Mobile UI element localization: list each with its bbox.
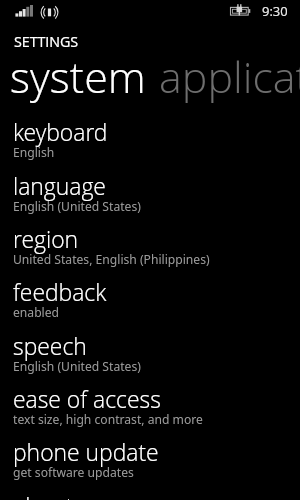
staticText: enabled	[13, 304, 60, 321]
other: Battery charging	[229, 3, 252, 19]
button[interactable]: language	[0, 171, 300, 224]
button[interactable]: applications	[159, 47, 300, 106]
staticText: speech	[13, 331, 87, 362]
staticText: English (United States)	[13, 198, 141, 215]
staticText: ease of access	[13, 384, 161, 415]
button[interactable]: ease of access	[0, 384, 300, 437]
other: Roaming	[41, 3, 59, 19]
button[interactable]: keyboard	[0, 117, 300, 170]
staticText: SETTINGS	[14, 32, 79, 51]
button[interactable]: speech	[0, 331, 300, 384]
button[interactable]: feedback	[0, 277, 300, 330]
button[interactable]: region	[0, 224, 300, 277]
staticText: phone update	[13, 437, 159, 468]
button[interactable]: phone update	[0, 437, 300, 490]
staticText: English	[13, 144, 55, 161]
staticText: feedback	[13, 277, 107, 308]
staticText: text size, high contrast, and more	[13, 411, 203, 428]
staticText: language	[13, 171, 106, 202]
staticText: United States, English (Philippines)	[13, 251, 210, 268]
staticText: English (United States)	[13, 358, 141, 375]
staticText: region	[13, 224, 79, 255]
staticText: get software updates	[13, 464, 134, 481]
staticText: 9:30	[262, 2, 288, 20]
staticText: keyboard	[13, 117, 108, 148]
other: Cellular signal strength	[14, 3, 34, 19]
staticText: about	[13, 491, 74, 500]
button[interactable]: about	[0, 491, 300, 500]
button[interactable]: system	[10, 47, 146, 106]
